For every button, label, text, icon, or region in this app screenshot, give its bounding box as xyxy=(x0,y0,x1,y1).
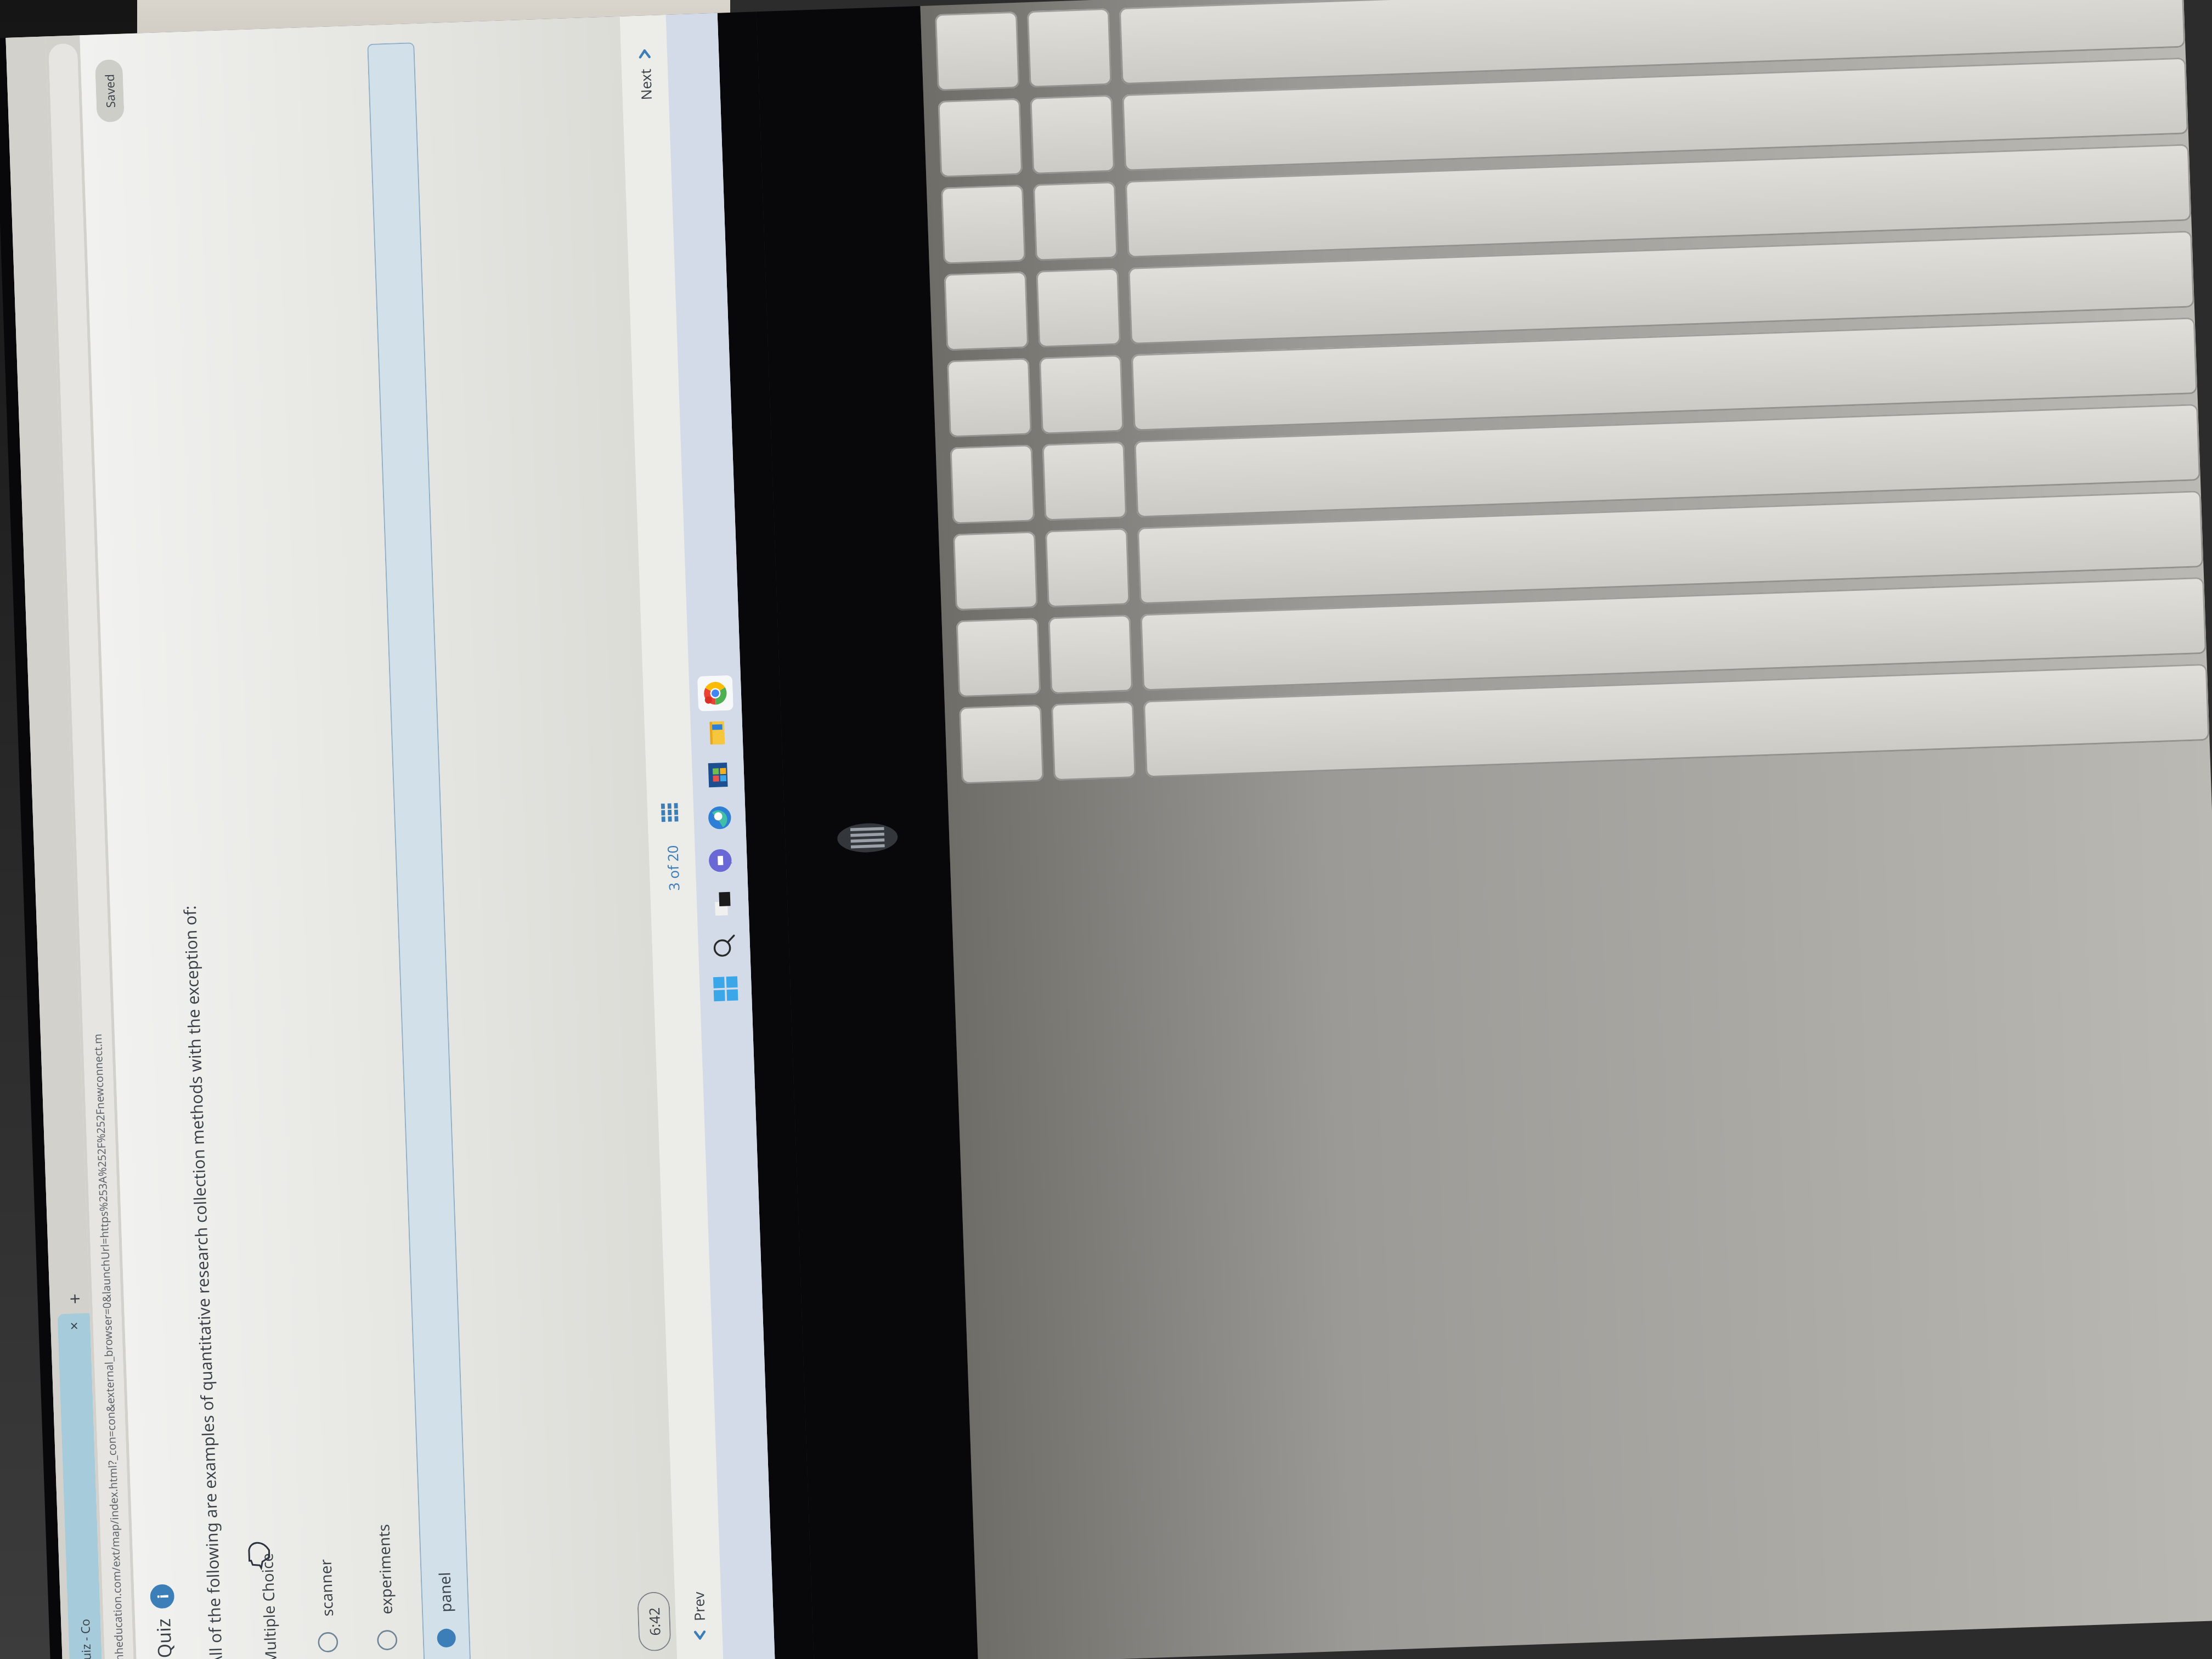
staticText: panel xyxy=(434,1571,456,1613)
other: File Explorer xyxy=(704,720,729,745)
button[interactable]: Question grid xyxy=(659,801,682,824)
staticText: scanner xyxy=(315,1558,337,1617)
button[interactable]: Task view xyxy=(708,889,737,918)
other: Chat xyxy=(709,848,734,873)
button[interactable]: Chrome xyxy=(702,680,728,706)
staticText: Next xyxy=(635,68,656,100)
other: Start xyxy=(713,976,738,1001)
staticText: All of the following are examples of qua… xyxy=(178,905,227,1659)
button[interactable]: Start xyxy=(711,974,740,1004)
staticText: i xyxy=(153,1594,172,1599)
staticText: o.mheducation.com/ext/map/index.html?_co… xyxy=(90,1033,127,1659)
staticText: + xyxy=(62,1293,87,1305)
button[interactable]: Edge xyxy=(705,803,734,833)
button[interactable]: New tab xyxy=(59,1283,90,1314)
button[interactable]: Prev xyxy=(684,1587,714,1648)
staticText: ✕ xyxy=(68,1321,80,1331)
staticText: Prev xyxy=(689,1591,709,1621)
other: Edge xyxy=(707,805,732,830)
button[interactable]: Next xyxy=(630,41,660,105)
staticText: Saved xyxy=(101,74,118,108)
other: Task view xyxy=(710,891,735,916)
button[interactable]: 7 Quiz - Co xyxy=(57,1313,103,1659)
other: Microsoft Store xyxy=(706,763,731,787)
button[interactable]: Search xyxy=(709,931,739,961)
button[interactable]: experiments xyxy=(308,44,412,1659)
button[interactable]: Information xyxy=(150,1584,175,1609)
staticText: Multiple Choice xyxy=(256,1552,281,1659)
staticText: 3 of 20 xyxy=(662,845,683,891)
other: Search xyxy=(712,934,737,959)
staticText: experiments xyxy=(373,1524,397,1615)
staticText: 7 Quiz xyxy=(150,1618,178,1659)
staticText: 7 Quiz - Co xyxy=(76,1619,95,1659)
staticText: 6:42 xyxy=(644,1607,664,1636)
button[interactable]: Microsoft Store xyxy=(703,760,733,790)
button[interactable]: scanner xyxy=(249,46,352,1659)
button[interactable]: o.mheducation.com/ext/map/index.html?_co… xyxy=(48,43,135,1659)
button[interactable]: panel xyxy=(367,42,471,1659)
button[interactable]: Chat xyxy=(706,846,736,875)
button[interactable]: File Explorer xyxy=(702,717,731,747)
